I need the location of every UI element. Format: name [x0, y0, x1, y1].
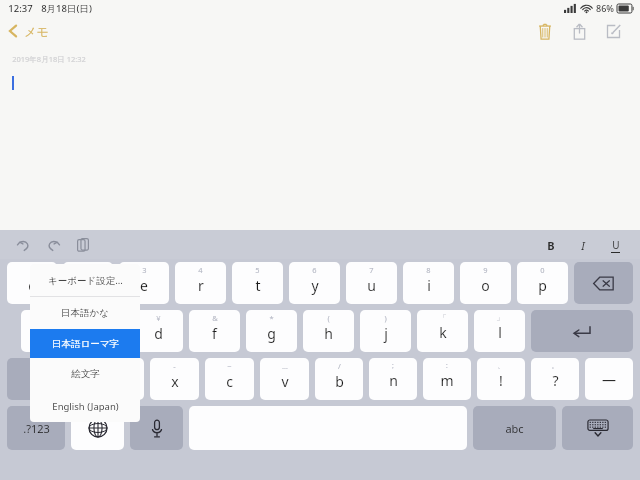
button[interactable]: ：	[423, 358, 471, 400]
button[interactable]: 。	[531, 358, 579, 400]
button[interactable]: Change keyboard	[71, 406, 124, 450]
button[interactable]: Hide keyboard	[562, 406, 633, 450]
staticText: c	[226, 372, 233, 391]
button[interactable]: English (Japan)	[30, 390, 140, 422]
staticText: 2019年8月18日 12:32	[12, 54, 86, 64]
staticText: j	[384, 324, 388, 343]
staticText: u	[367, 276, 376, 295]
button[interactable]: Compose	[598, 16, 628, 46]
button[interactable]: 5	[232, 262, 283, 304]
button[interactable]: @	[21, 310, 71, 352]
button[interactable]: 6	[289, 262, 340, 304]
staticText: !	[499, 371, 503, 390]
button[interactable]: .?123	[7, 406, 65, 450]
button[interactable]: 3	[119, 262, 169, 304]
staticText: g	[267, 324, 276, 343]
button[interactable]: 7	[346, 262, 397, 304]
staticText: 7	[369, 265, 374, 275]
staticText: m	[440, 371, 454, 390]
button[interactable]: ¥	[133, 310, 183, 352]
staticText: キーボード設定...	[48, 274, 123, 287]
button[interactable]: Backspace	[574, 262, 633, 304]
staticText: s	[99, 324, 106, 343]
staticText: p	[538, 276, 547, 295]
button[interactable]: Delete	[530, 16, 560, 46]
button[interactable]: )	[360, 310, 411, 352]
staticText: U	[612, 238, 620, 252]
button[interactable]: Redo	[40, 232, 66, 258]
staticText: x	[171, 372, 179, 391]
button[interactable]: 、	[477, 358, 525, 400]
button[interactable]: 「	[417, 310, 468, 352]
staticText: .?123	[23, 421, 50, 436]
staticText: メモ	[24, 24, 49, 39]
staticText: 3	[142, 265, 147, 275]
staticText: 6	[312, 265, 317, 275]
staticText: (	[327, 313, 330, 323]
button[interactable]: (	[303, 310, 354, 352]
button[interactable]: B	[540, 234, 562, 256]
button[interactable]: &	[189, 310, 240, 352]
button[interactable]: U	[604, 234, 626, 256]
staticText: —	[602, 370, 616, 389]
button[interactable]: 日本語かな	[30, 297, 140, 329]
staticText: 日本語かな	[61, 307, 109, 319]
staticText: abc	[505, 421, 524, 436]
staticText: -	[173, 361, 176, 371]
button[interactable]: 8	[403, 262, 454, 304]
button[interactable]: abc	[473, 406, 556, 450]
staticText: 。	[551, 361, 559, 370]
staticText: 」	[496, 313, 504, 322]
staticText: 12:37	[8, 2, 33, 15]
button[interactable]: 2	[63, 262, 113, 304]
button[interactable]: %	[95, 358, 144, 400]
staticText: a	[42, 324, 50, 343]
staticText: w	[82, 276, 94, 295]
button[interactable]: Shift	[7, 358, 89, 400]
staticText: #	[100, 313, 105, 323]
button[interactable]: Return	[531, 310, 633, 352]
button[interactable]: キーボード設定...	[30, 264, 140, 296]
staticText: 9	[483, 265, 488, 275]
staticText: i	[427, 276, 431, 295]
button[interactable]: 1	[7, 262, 57, 304]
staticText: ：	[443, 361, 451, 370]
staticText: r	[198, 276, 204, 295]
button[interactable]: I	[572, 234, 594, 256]
button[interactable]: Dictation	[130, 406, 183, 450]
staticText: 8月18日(日)	[41, 2, 92, 15]
staticText: ；	[389, 361, 397, 370]
button[interactable]: 9	[460, 262, 511, 304]
button[interactable]: 日本語ローマ字	[30, 329, 140, 358]
button[interactable]: *	[246, 310, 297, 352]
staticText: n	[389, 371, 398, 390]
button[interactable]: Share	[564, 16, 594, 46]
staticText: 4	[198, 265, 203, 275]
button[interactable]: ；	[369, 358, 417, 400]
staticText: h	[324, 324, 333, 343]
staticText: 、	[497, 361, 505, 370]
staticText: …	[282, 361, 288, 371]
staticText: e	[140, 276, 148, 295]
button[interactable]: 0	[517, 262, 568, 304]
button[interactable]: ~	[205, 358, 254, 400]
button[interactable]: 絵文字	[30, 358, 140, 390]
button[interactable]: -	[150, 358, 199, 400]
staticText: q	[28, 276, 37, 295]
button[interactable]: Paste	[70, 232, 96, 258]
button[interactable]: …	[260, 358, 309, 400]
button[interactable]: 4	[175, 262, 226, 304]
button[interactable]: —	[585, 358, 633, 400]
button[interactable]: Undo	[10, 232, 36, 258]
staticText: /	[338, 361, 341, 371]
button[interactable]: メモ	[6, 16, 49, 46]
button[interactable]: 」	[474, 310, 525, 352]
button[interactable]: /	[315, 358, 363, 400]
button[interactable]: #	[77, 310, 127, 352]
staticText: )	[384, 313, 387, 323]
staticText: b	[335, 372, 344, 391]
